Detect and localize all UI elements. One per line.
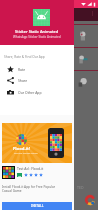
button[interactable]: INSTALL	[2, 202, 72, 210]
button[interactable]: Rate	[0, 63, 74, 75]
staticText: Flood-it!	[13, 146, 31, 152]
button[interactable]: Our Other App	[0, 86, 74, 98]
staticText: Test Ad : Flood-it	[17, 166, 44, 171]
staticText: Sticker Static Animated	[15, 29, 59, 34]
staticText: Our Other App	[18, 90, 42, 95]
staticText: INSTALL	[31, 204, 44, 208]
staticText: Rate	[18, 67, 26, 72]
staticText: Pro the Simple Game	[14, 151, 38, 154]
staticText: Ad	[18, 174, 21, 177]
staticText: WhatsApp Sticker Static Animated	[13, 35, 61, 39]
button[interactable]: Share	[0, 74, 74, 86]
staticText: TED	[77, 185, 84, 190]
staticText: Install Flood-it App for Free Popular Ca…	[2, 185, 56, 193]
staticText: Share, Rate & Find Our App	[4, 55, 45, 59]
staticText: Share	[18, 78, 28, 83]
